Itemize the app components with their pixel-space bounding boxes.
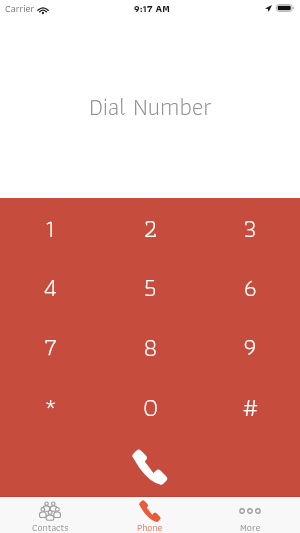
button[interactable]: More — [200, 497, 300, 533]
staticText: 5 — [143, 267, 157, 308]
staticText: 4 — [43, 267, 58, 308]
button[interactable]: 1 — [0, 198, 100, 257]
button[interactable]: 5 — [100, 257, 200, 316]
staticText: More — [240, 519, 261, 533]
button[interactable]: 6 — [200, 257, 300, 316]
button[interactable]: 4 — [0, 257, 100, 316]
staticText: 9 — [243, 327, 257, 368]
button[interactable]: 3 — [200, 198, 300, 257]
staticText: 3 — [243, 208, 257, 249]
button[interactable]: 7 — [0, 316, 100, 376]
button[interactable]: 0 — [100, 376, 200, 436]
button[interactable]: 2 — [100, 198, 200, 257]
button[interactable]: Contacts — [0, 497, 100, 533]
staticText: # — [241, 387, 260, 428]
button[interactable]: Phone — [100, 497, 200, 533]
staticText: Contacts — [32, 519, 69, 533]
staticText: Carrier — [5, 0, 35, 17]
staticText: Dial Number — [89, 87, 212, 126]
button[interactable]: 8 — [100, 316, 200, 376]
staticText: Phone — [137, 519, 163, 533]
staticText: 9:17 AM — [134, 0, 170, 16]
staticText: 1 — [45, 208, 55, 249]
staticText: 7 — [43, 327, 58, 368]
staticText: 0 — [142, 387, 159, 428]
button[interactable]: Call — [121, 437, 179, 495]
staticText: 6 — [243, 267, 257, 308]
button[interactable]: * — [0, 376, 100, 436]
staticText: 8 — [143, 327, 158, 368]
staticText: * — [44, 387, 57, 428]
staticText: 2 — [143, 208, 158, 249]
button[interactable]: 9 — [200, 316, 300, 376]
button[interactable]: # — [200, 376, 300, 436]
